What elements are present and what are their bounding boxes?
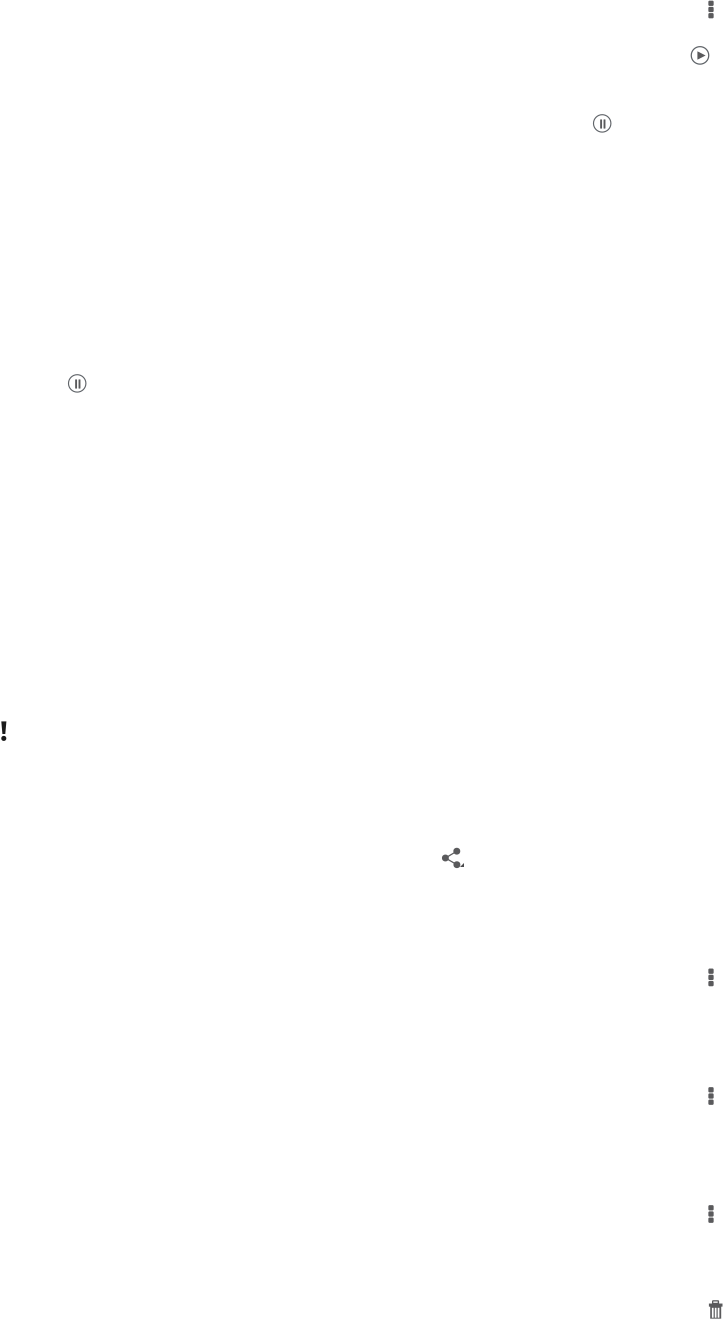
button[interactable]: Pause (580, 101, 624, 145)
button[interactable]: Pause (55, 361, 99, 405)
button[interactable]: More options (689, 955, 723, 999)
button[interactable]: More options (689, 1074, 723, 1118)
button[interactable]: More options (689, 0, 723, 31)
button[interactable]: More options (689, 1192, 723, 1236)
button[interactable]: Play (678, 33, 722, 77)
button[interactable]: Delete (694, 1288, 723, 1319)
button[interactable]: Share (430, 837, 474, 881)
